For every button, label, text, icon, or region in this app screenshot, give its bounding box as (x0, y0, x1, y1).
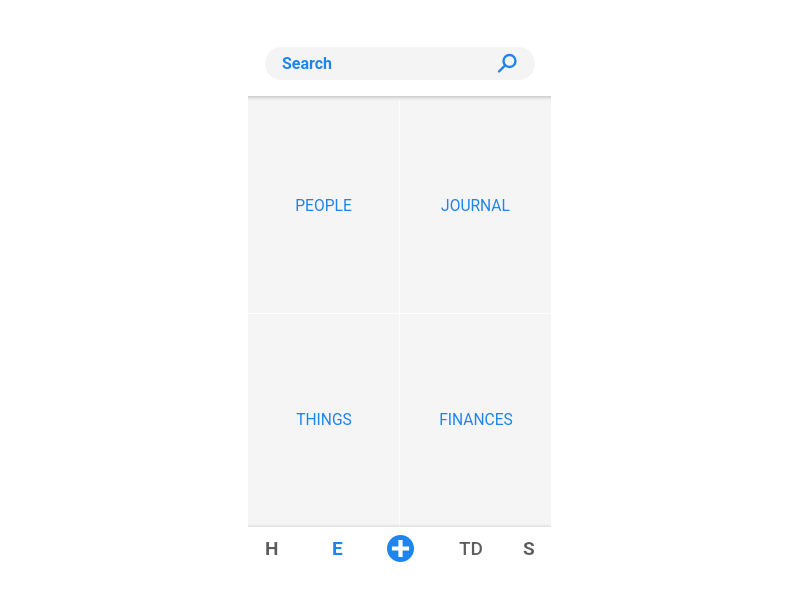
button[interactable]: PEOPLE (248, 100, 399, 313)
button[interactable]: THINGS (248, 314, 399, 527)
staticText: THINGS (296, 411, 352, 429)
button[interactable]: JOURNAL (400, 100, 551, 313)
button[interactable]: Search (265, 47, 535, 80)
button[interactable]: H (248, 527, 296, 568)
staticText: PEOPLE (295, 197, 352, 215)
button[interactable]: S (505, 527, 553, 568)
button[interactable]: FINANCES (400, 314, 551, 527)
button[interactable]: TD (447, 527, 495, 568)
staticText: TD (459, 537, 483, 559)
staticText: FINANCES (439, 411, 513, 429)
button[interactable]: E (313, 527, 361, 568)
staticText: S (523, 537, 535, 559)
staticText: H (265, 537, 279, 559)
button[interactable]: Add (387, 535, 414, 562)
staticText: JOURNAL (441, 197, 510, 215)
staticText: E (332, 537, 343, 559)
staticText: Search (282, 54, 333, 73)
